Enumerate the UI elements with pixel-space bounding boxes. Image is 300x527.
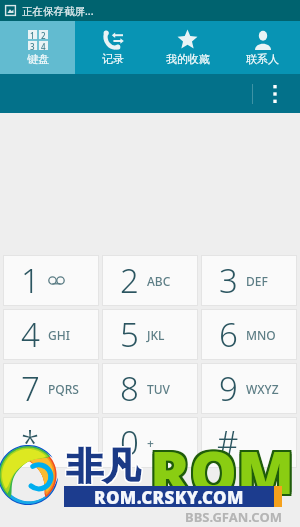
staticText: 正在保存截屏... xyxy=(22,4,94,18)
staticText: 联系人 xyxy=(246,52,279,66)
staticText: MNO xyxy=(246,327,276,343)
button[interactable]: * xyxy=(4,418,98,467)
staticText: 非凡 xyxy=(65,444,139,491)
staticText: 8 xyxy=(120,366,139,411)
staticText: RQM xyxy=(148,429,293,509)
staticText: 0 xyxy=(120,420,139,465)
button[interactable]: 联系人 xyxy=(225,21,300,74)
staticText: 1 xyxy=(30,30,35,39)
staticText: WXYZ xyxy=(246,381,279,397)
staticText: 非凡 xyxy=(66,444,140,491)
staticText: RQM xyxy=(150,431,295,511)
button[interactable]: 2 xyxy=(103,256,197,305)
staticText: BBS.GFAN.COM xyxy=(185,508,282,526)
staticText: GHI xyxy=(48,327,70,343)
button[interactable]: 6 xyxy=(202,310,296,359)
button[interactable]: 记录 xyxy=(75,21,150,74)
staticText: ROM.CRSKY.COM xyxy=(94,486,244,507)
staticText: 非凡 xyxy=(67,444,141,491)
staticText: RQM xyxy=(150,433,295,513)
staticText: 非凡 xyxy=(65,443,139,490)
staticText: * xyxy=(21,420,40,465)
staticText: TUV xyxy=(147,381,170,397)
staticText: 非凡 xyxy=(66,442,140,489)
staticText: 7 xyxy=(21,366,40,411)
staticText: 4 xyxy=(21,312,40,357)
staticText: 4 xyxy=(41,41,46,50)
staticText: 记录 xyxy=(102,52,124,66)
button[interactable]: 3 xyxy=(202,256,296,305)
button[interactable]: 1 xyxy=(0,21,75,74)
staticText: ABC xyxy=(147,273,171,289)
staticText: RQM xyxy=(152,429,297,509)
button[interactable]: 我的收藏 xyxy=(150,21,225,74)
staticText: 非凡 xyxy=(65,442,139,489)
staticText: 3 xyxy=(219,258,238,303)
staticText: RQM xyxy=(152,433,297,513)
staticText: 1 xyxy=(21,258,40,303)
staticText: RQM xyxy=(148,433,293,513)
staticText: 5 xyxy=(120,312,139,357)
staticText: 6 xyxy=(219,312,238,357)
staticText: 键盘 xyxy=(27,52,49,66)
staticText: JKL xyxy=(147,327,165,343)
staticText: RQM xyxy=(148,431,293,511)
button[interactable]: More options xyxy=(262,74,288,113)
staticText: 非凡 xyxy=(67,442,141,489)
staticText: 9 xyxy=(219,366,238,411)
button[interactable]: 7 xyxy=(4,364,98,413)
button[interactable]: 4 xyxy=(4,310,98,359)
staticText: # xyxy=(217,420,239,465)
staticText: 非凡 xyxy=(66,443,140,490)
staticText: 我的收藏 xyxy=(166,52,210,66)
button[interactable]: 1 xyxy=(4,256,98,305)
staticText: 2 xyxy=(41,30,46,39)
staticText: + xyxy=(147,435,154,451)
button[interactable]: 5 xyxy=(103,310,197,359)
staticText: 2 xyxy=(120,258,139,303)
button[interactable]: # xyxy=(202,418,296,467)
staticText: DEF xyxy=(246,273,268,289)
staticText: RQM xyxy=(150,429,295,509)
button[interactable]: 9 xyxy=(202,364,296,413)
staticText: 非凡 xyxy=(67,443,141,490)
button[interactable]: 0 xyxy=(103,418,197,467)
button[interactable]: 8 xyxy=(103,364,197,413)
staticText: 3 xyxy=(30,41,35,50)
staticText: PQRS xyxy=(48,381,79,397)
staticText: RQM xyxy=(152,431,297,511)
